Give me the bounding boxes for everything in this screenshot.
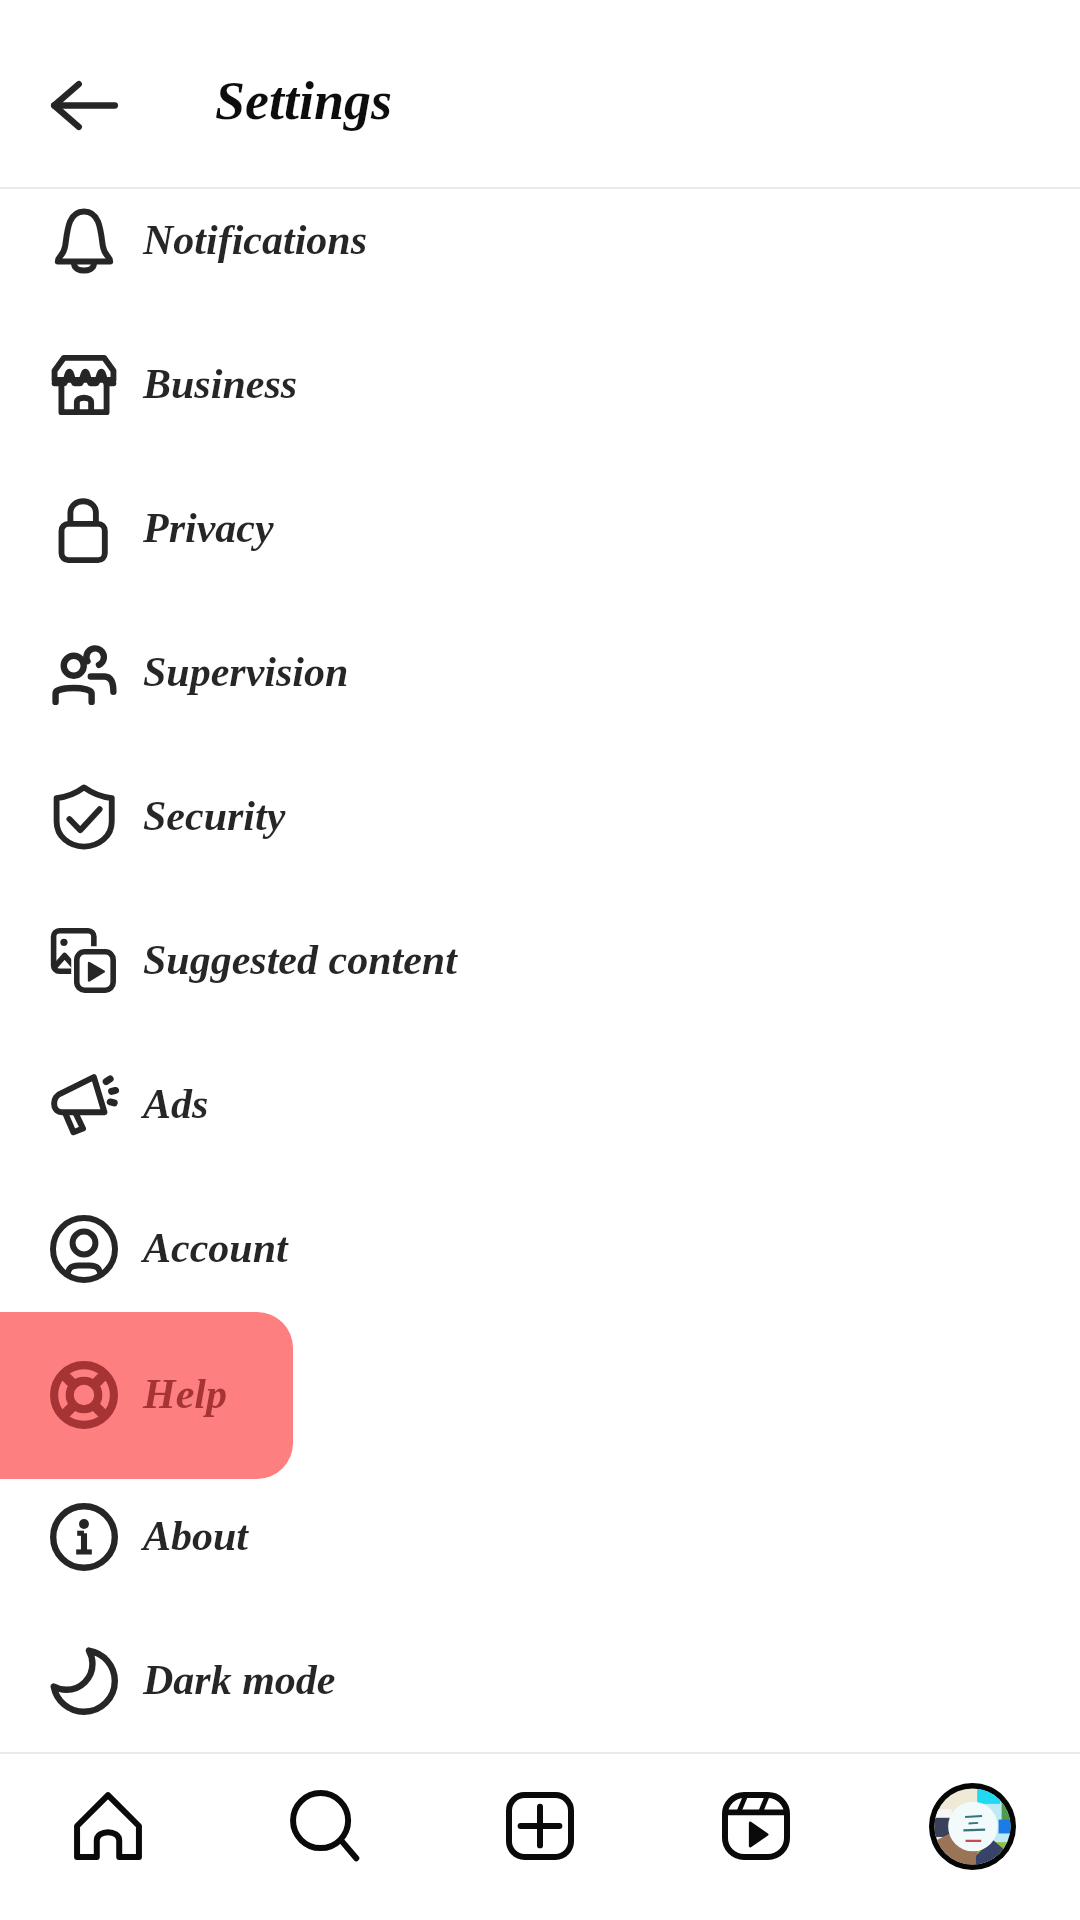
button[interactable]: Search xyxy=(216,1754,432,1920)
staticText: Privacy xyxy=(143,505,274,552)
button[interactable]: Reels xyxy=(648,1754,864,1920)
button[interactable]: About xyxy=(0,1453,1080,1620)
staticText: Security xyxy=(143,793,286,840)
staticText: Notifications xyxy=(143,217,368,264)
button[interactable]: Ads xyxy=(0,1021,1080,1188)
button[interactable]: Suggested content xyxy=(0,877,1080,1044)
button[interactable]: Account xyxy=(0,1165,1080,1332)
button[interactable]: Supervision xyxy=(0,589,1080,756)
button[interactable]: Notifications xyxy=(0,157,1080,324)
staticText: About xyxy=(143,1513,249,1560)
staticText: Settings xyxy=(215,71,393,131)
staticText: Supervision xyxy=(143,649,349,696)
button[interactable]: Help xyxy=(0,1312,293,1479)
button[interactable]: Home xyxy=(0,1754,216,1920)
button[interactable]: Dark mode xyxy=(0,1597,1080,1764)
staticText: Dark mode xyxy=(143,1657,336,1704)
button[interactable]: Back xyxy=(36,68,132,142)
button[interactable]: Profile xyxy=(864,1754,1080,1920)
staticText: Business xyxy=(143,361,298,408)
staticText: Help xyxy=(143,1371,227,1418)
button[interactable]: Create xyxy=(432,1754,648,1920)
button[interactable]: Privacy xyxy=(0,445,1080,612)
staticText: Suggested content xyxy=(143,937,457,984)
staticText: Account xyxy=(143,1225,288,1272)
button[interactable]: Security xyxy=(0,733,1080,900)
button[interactable]: Business xyxy=(0,301,1080,468)
staticText: Ads xyxy=(143,1081,209,1128)
